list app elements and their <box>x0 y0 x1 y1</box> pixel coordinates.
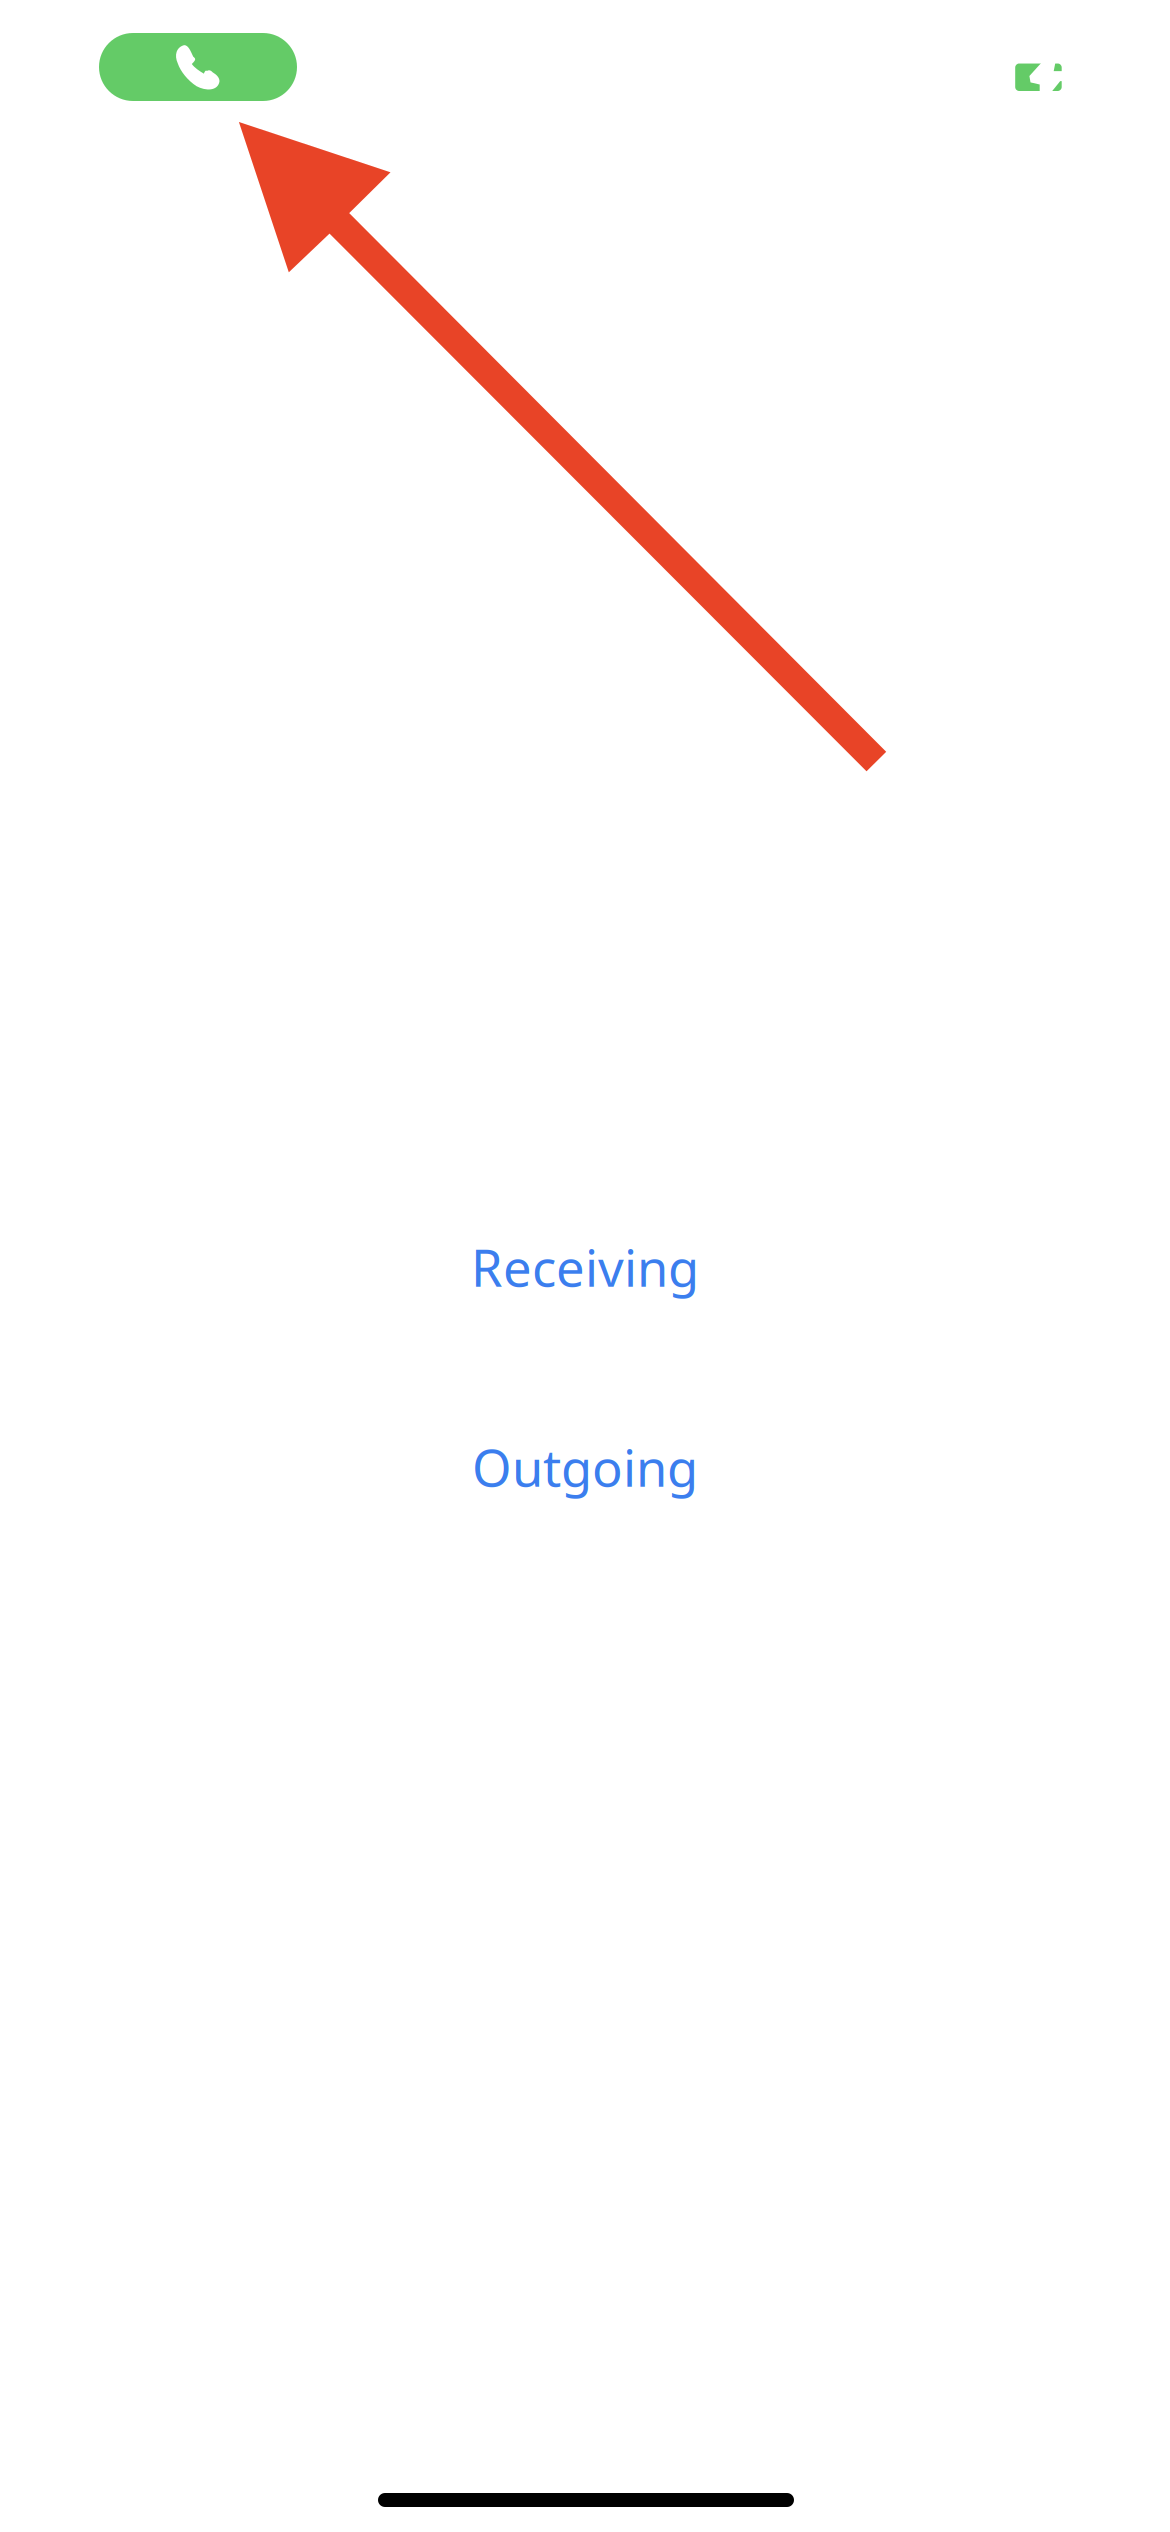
button[interactable]: Receiving <box>471 1233 699 1301</box>
button[interactable]: Outgoing <box>472 1433 698 1501</box>
button[interactable]: Return to call <box>99 33 297 101</box>
staticText: Receiving <box>471 1233 699 1301</box>
staticText: Outgoing <box>472 1433 698 1501</box>
